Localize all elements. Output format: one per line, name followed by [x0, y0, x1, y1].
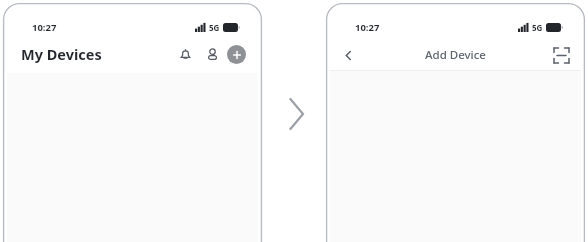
button[interactable]: Scan QR code: [551, 45, 571, 65]
button[interactable]: Add device: [227, 45, 246, 64]
staticText: 5G: [532, 22, 543, 33]
staticText: My Devices: [21, 44, 102, 64]
button[interactable]: Notifications: [174, 43, 196, 65]
button[interactable]: Profile: [201, 43, 223, 65]
staticText: 10:27: [355, 21, 380, 34]
button[interactable]: Back: [338, 45, 358, 65]
staticText: Add Device: [425, 47, 486, 63]
staticText: 10:27: [32, 21, 57, 34]
staticText: 5G: [209, 22, 220, 33]
